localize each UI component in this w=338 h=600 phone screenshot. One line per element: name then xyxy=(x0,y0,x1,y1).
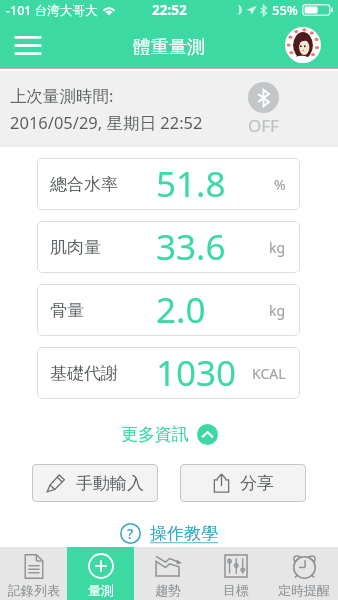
staticText: 目標 xyxy=(223,582,249,598)
button[interactable]: 總合水率 xyxy=(37,158,300,210)
button[interactable]: 骨量 xyxy=(37,284,300,336)
button[interactable]: 更多資訊 xyxy=(0,419,338,449)
staticText: OFF xyxy=(248,114,279,137)
button[interactable]: 目標 xyxy=(202,547,270,600)
staticText: 手動輸入 xyxy=(76,473,144,494)
button[interactable]: Bluetooth OFF xyxy=(248,82,279,137)
staticText: 33.6 xyxy=(156,223,226,271)
staticText: 55% xyxy=(272,1,298,19)
button[interactable]: 手動輸入 xyxy=(32,464,158,502)
staticText: 更多資訊 xyxy=(121,424,189,445)
button[interactable]: 基礎代謝 xyxy=(37,347,300,399)
button[interactable]: Menu xyxy=(8,25,48,65)
staticText: 趨勢 xyxy=(155,582,181,598)
staticText: -101 台湾大哥大 xyxy=(6,2,98,19)
staticText: ? xyxy=(127,524,134,543)
staticText: 22:52 xyxy=(152,1,187,19)
staticText: 51.8 xyxy=(156,160,226,208)
staticText: KCAL xyxy=(252,364,286,383)
staticText: 分享 xyxy=(240,473,274,494)
staticText: 2016/05/29, 星期日 22:52 xyxy=(10,111,203,134)
button[interactable]: 量測 xyxy=(67,547,134,600)
staticText: 操作教學 xyxy=(150,523,218,544)
staticText: 基礎代謝 xyxy=(50,363,118,384)
button[interactable]: 肌肉量 xyxy=(37,221,300,273)
staticText: kg xyxy=(269,301,286,320)
staticText: 總合水率 xyxy=(50,174,118,195)
staticText: 體重量測 xyxy=(133,36,205,59)
staticText: 定時提醒 xyxy=(278,582,330,598)
button[interactable]: Profile xyxy=(285,27,321,63)
staticText: kg xyxy=(269,238,286,257)
staticText: % xyxy=(274,175,286,194)
staticText: 2.0 xyxy=(156,286,206,334)
button[interactable]: ? xyxy=(0,518,338,548)
staticText: 骨量 xyxy=(50,300,84,321)
staticText: 記錄列表 xyxy=(8,582,60,598)
button[interactable]: 分享 xyxy=(180,464,306,502)
staticText: 1030 xyxy=(156,349,237,397)
staticText: 上次量測時間: xyxy=(10,84,114,107)
button[interactable]: 趨勢 xyxy=(134,547,202,600)
staticText: 肌肉量 xyxy=(50,237,101,258)
button[interactable]: 記錄列表 xyxy=(0,547,67,600)
staticText: 量測 xyxy=(88,582,114,598)
button[interactable]: 定時提醒 xyxy=(270,547,338,600)
